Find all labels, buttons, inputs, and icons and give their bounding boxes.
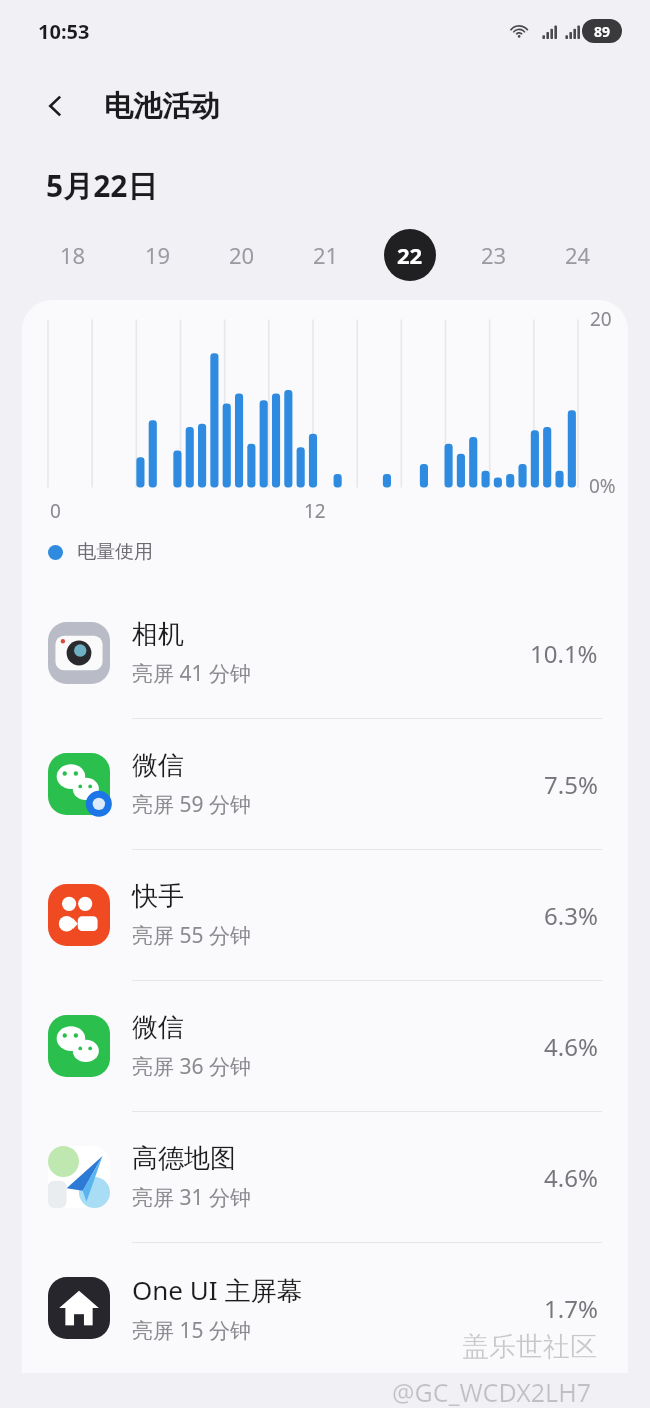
staticText: One UI 主屏幕	[132, 1272, 303, 1308]
staticText: 亮屏 15 分钟	[132, 1316, 251, 1345]
button[interactable]: 22	[368, 227, 452, 283]
button[interactable]: 微信	[22, 981, 628, 1112]
button[interactable]: Back	[34, 84, 78, 128]
staticText: 微信	[132, 1011, 184, 1044]
staticText: 亮屏 55 分钟	[132, 921, 251, 950]
staticText: 1.7%	[544, 1292, 598, 1325]
staticText: 盖乐世社区	[462, 1330, 597, 1364]
staticText: 4.6%	[544, 1030, 598, 1063]
staticText: 0%	[589, 473, 616, 499]
staticText: 12	[304, 498, 326, 524]
staticText: 高德地图	[132, 1142, 236, 1175]
button[interactable]: 21	[284, 227, 368, 283]
button[interactable]: 23	[452, 227, 536, 283]
staticText: 19	[145, 240, 171, 270]
staticText: 0	[50, 498, 61, 524]
staticText: 亮屏 31 分钟	[132, 1183, 251, 1212]
staticText: 24	[565, 240, 591, 270]
staticText: 5月22日	[46, 165, 158, 206]
staticText: 微信	[132, 749, 184, 782]
staticText: 亮屏 36 分钟	[132, 1052, 251, 1081]
staticText: 4.6%	[544, 1161, 598, 1194]
button[interactable]: 18	[30, 227, 115, 283]
staticText: 相机	[132, 618, 184, 651]
button[interactable]: 20	[200, 227, 284, 283]
staticText: 21	[313, 240, 339, 270]
button[interactable]: 24	[536, 227, 620, 283]
button[interactable]: 高德地图	[22, 1112, 628, 1243]
staticText: 亮屏 41 分钟	[132, 659, 251, 688]
staticText: @GC_WCDX2LH7	[392, 1375, 592, 1408]
staticText: 18	[60, 240, 86, 270]
button[interactable]: 快手	[22, 850, 628, 981]
staticText: 电量使用	[77, 540, 153, 564]
staticText: 6.3%	[544, 899, 598, 932]
staticText: 10:53	[38, 18, 90, 45]
button[interactable]: 微信	[22, 719, 628, 850]
staticText: 20	[229, 240, 255, 270]
staticText: 7.5%	[544, 768, 598, 801]
staticText: 20	[590, 306, 612, 332]
staticText: 亮屏 59 分钟	[132, 790, 251, 819]
button[interactable]: One UI 主屏幕	[22, 1243, 628, 1373]
staticText: 22	[397, 240, 423, 270]
staticText: 电池活动	[104, 88, 220, 125]
staticText: 89	[594, 22, 611, 41]
button[interactable]: 相机	[22, 588, 628, 719]
staticText: 10.1%	[530, 637, 598, 670]
staticText: 23	[481, 240, 507, 270]
button[interactable]: 19	[115, 227, 200, 283]
staticText: 快手	[132, 880, 184, 913]
